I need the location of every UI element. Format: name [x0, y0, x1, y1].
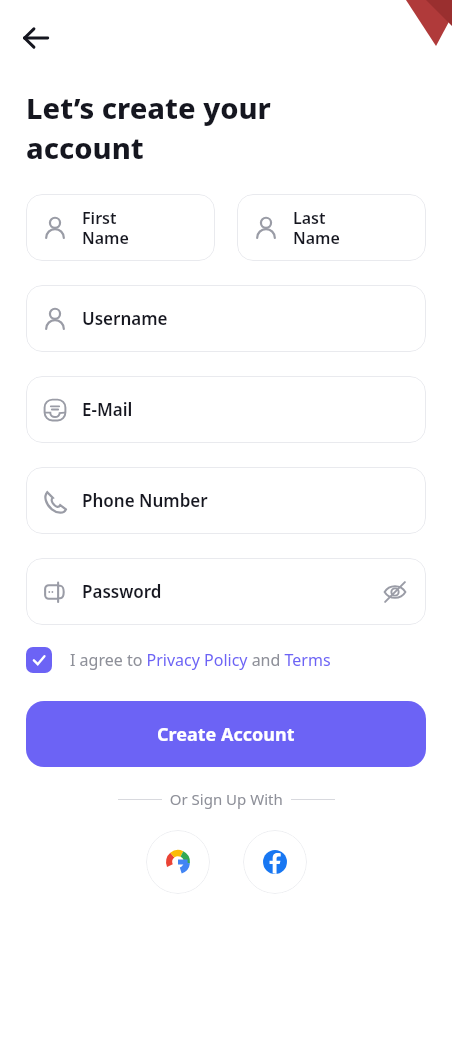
- staticText: Password: [82, 580, 380, 603]
- staticText: Last Name: [293, 207, 410, 248]
- button[interactable]: Username: [26, 285, 426, 352]
- button[interactable]: Sign up with Google: [146, 830, 210, 894]
- button[interactable]: Last Name: [237, 194, 426, 261]
- button[interactable]: E-Mail: [26, 376, 426, 443]
- staticText: E-Mail: [82, 398, 410, 421]
- staticText: Create Account: [157, 722, 295, 747]
- button[interactable]: Back: [14, 16, 58, 60]
- staticText: Let’s create your account: [26, 88, 271, 168]
- button[interactable]: Sign up with Facebook: [243, 830, 307, 894]
- button[interactable]: Show password: [380, 577, 410, 607]
- staticText: First Name: [82, 207, 199, 248]
- button[interactable]: Password: [26, 558, 426, 625]
- button[interactable]: Create Account: [26, 701, 426, 767]
- button[interactable]: First Name: [26, 194, 215, 261]
- staticText: Phone Number: [82, 489, 410, 512]
- staticText: I agree to Privacy Policy and Terms: [70, 649, 331, 671]
- staticText: Username: [82, 307, 410, 330]
- button[interactable]: Phone Number: [26, 467, 426, 534]
- button[interactable]: I agree to Privacy Policy and Terms: [26, 647, 426, 673]
- staticText: Or Sign Up With: [162, 789, 291, 809]
